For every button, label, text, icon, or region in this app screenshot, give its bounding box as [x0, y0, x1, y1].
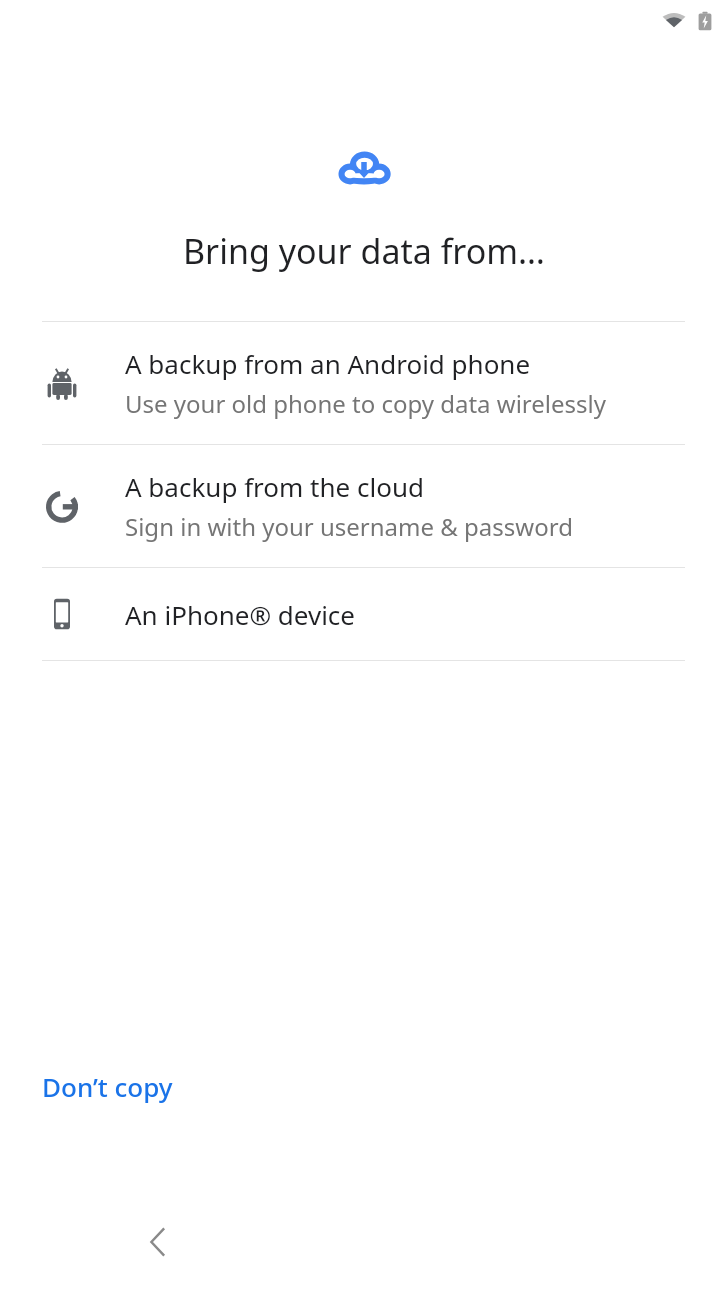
button[interactable]: An iPhone® device: [0, 568, 727, 660]
staticText: A backup from an Android phone: [125, 346, 531, 381]
staticText: A backup from the cloud: [125, 469, 424, 504]
button[interactable]: A backup from the cloud: [0, 445, 727, 567]
button[interactable]: Don’t copy: [0, 1063, 193, 1110]
staticText: An iPhone® device: [125, 597, 355, 632]
staticText: Don’t copy: [42, 1069, 173, 1104]
staticText: Use your old phone to copy data wireless…: [125, 387, 606, 420]
button[interactable]: A backup from an Android phone: [0, 322, 727, 444]
staticText: Bring your data from…: [183, 228, 545, 274]
button[interactable]: Back: [130, 1214, 186, 1270]
staticText: Sign in with your username & password: [125, 510, 573, 543]
